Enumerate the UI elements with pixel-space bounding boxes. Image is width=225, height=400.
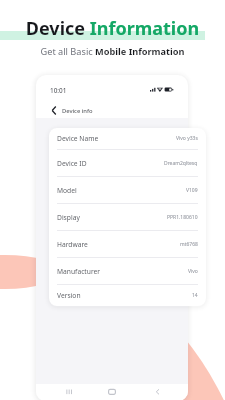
staticText: Vivo y33s (176, 135, 198, 142)
staticText: 14 (192, 292, 198, 299)
button[interactable]: Hardware (49, 231, 206, 257)
staticText: Version (57, 291, 81, 300)
staticText: Device Name (57, 134, 99, 143)
staticText: Device info (62, 107, 93, 115)
staticText: Hardware (57, 240, 88, 249)
button[interactable]: Version (49, 285, 206, 306)
staticText: Display (57, 213, 80, 222)
staticText: PPR1.180610 (167, 214, 198, 221)
button[interactable]: Device Name (49, 128, 206, 149)
staticText: Device ID (57, 159, 87, 168)
button[interactable]: Device ID (49, 150, 206, 176)
button[interactable]: Model (49, 177, 206, 203)
staticText: Dream2qltesq (164, 160, 198, 167)
staticText: Manufacturer (57, 267, 101, 276)
staticText: V109 (186, 187, 198, 194)
other: Status icons (150, 87, 173, 92)
button[interactable]: Display (49, 204, 206, 230)
staticText: Get all Basic Mobile Information (0, 45, 225, 58)
staticText: 10:01 (50, 86, 67, 95)
button[interactable]: Back (51, 106, 93, 115)
staticText: Model (57, 186, 77, 195)
button[interactable]: Manufacturer (49, 258, 206, 284)
staticText: mt6768 (180, 241, 198, 248)
staticText: Vivo (188, 268, 198, 275)
staticText: Device Information (0, 16, 225, 41)
